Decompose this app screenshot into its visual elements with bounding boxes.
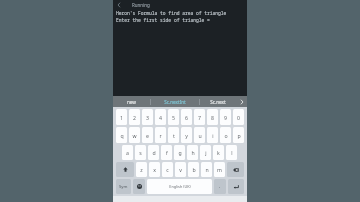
staticText: q <box>120 132 124 139</box>
button[interactable]: u <box>194 127 205 143</box>
button[interactable]: a <box>122 145 133 160</box>
button[interactable]: Back <box>115 1 122 8</box>
staticText: Heron's Formula to find area of triangle <box>116 10 227 16</box>
staticText: Sc.next <box>210 99 226 105</box>
button[interactable]: x <box>149 162 160 177</box>
button[interactable]: w <box>129 127 140 143</box>
staticText: 4 <box>159 114 162 121</box>
staticText: s <box>139 149 142 156</box>
button[interactable]: m <box>214 162 225 177</box>
button[interactable]: 6 <box>181 109 192 125</box>
button[interactable]: t <box>168 127 179 143</box>
staticText: a <box>126 149 129 156</box>
staticText: new <box>127 99 136 105</box>
button[interactable]: g <box>174 145 185 160</box>
button[interactable]: Period <box>214 179 226 194</box>
button[interactable]: v <box>175 162 186 177</box>
staticText: Enter the first side of triangle = <box>116 17 210 23</box>
button[interactable]: d <box>148 145 159 160</box>
staticText: g <box>178 149 182 156</box>
button[interactable]: z <box>136 162 147 177</box>
button[interactable]: j <box>200 145 211 160</box>
button[interactable]: 7 <box>194 109 205 125</box>
staticText: Sym <box>119 184 128 190</box>
button[interactable]: 9 <box>220 109 231 125</box>
staticText: h <box>191 149 195 156</box>
button[interactable]: q <box>116 127 127 143</box>
staticText: i <box>212 132 214 139</box>
button[interactable]: Sc.next <box>200 96 236 107</box>
button[interactable]: Symbols <box>116 179 131 194</box>
staticText: t <box>173 132 175 139</box>
button[interactable]: p <box>233 127 244 143</box>
staticText: 7 <box>198 114 201 121</box>
staticText: r <box>159 132 162 139</box>
staticText: w <box>132 132 137 139</box>
staticText: v <box>179 166 182 173</box>
staticText: 3 <box>146 114 149 121</box>
button[interactable]: 8 <box>207 109 218 125</box>
staticText: j <box>205 149 207 156</box>
button[interactable]: l <box>226 145 237 160</box>
staticText: m <box>217 166 222 173</box>
button[interactable]: Emoji <box>133 179 145 194</box>
staticText: English (UK) <box>169 184 191 189</box>
button[interactable]: Shift <box>116 162 134 177</box>
staticText: Sc.nextInt <box>164 99 186 105</box>
button[interactable]: 3 <box>142 109 153 125</box>
button[interactable]: b <box>188 162 199 177</box>
staticText: d <box>152 149 156 156</box>
staticText: . <box>219 183 221 190</box>
button[interactable]: Backspace <box>227 162 244 177</box>
staticText: e <box>146 132 149 139</box>
button[interactable]: 0 <box>233 109 244 125</box>
staticText: p <box>237 132 241 139</box>
staticText: 2 <box>133 114 136 121</box>
button[interactable]: k <box>213 145 224 160</box>
button[interactable]: i <box>207 127 218 143</box>
staticText: 8 <box>211 114 214 121</box>
staticText: u <box>198 132 202 139</box>
button[interactable]: y <box>181 127 192 143</box>
staticText: b <box>192 166 196 173</box>
button[interactable]: h <box>187 145 198 160</box>
button[interactable]: More suggestions <box>236 96 247 107</box>
staticText: c <box>166 166 169 173</box>
staticText: y <box>185 132 188 139</box>
staticText: 5 <box>172 114 175 121</box>
button[interactable]: s <box>135 145 146 160</box>
button[interactable]: n <box>201 162 212 177</box>
staticText: k <box>217 149 220 156</box>
staticText: l <box>231 149 233 156</box>
button[interactable]: c <box>162 162 173 177</box>
button[interactable]: e <box>142 127 153 143</box>
staticText: z <box>140 166 143 173</box>
staticText: n <box>205 166 209 173</box>
button[interactable]: new <box>113 96 150 107</box>
staticText: f <box>166 149 168 156</box>
button[interactable]: o <box>220 127 231 143</box>
staticText: 9 <box>224 114 227 121</box>
button[interactable]: 4 <box>155 109 166 125</box>
staticText: 6 <box>185 114 188 121</box>
staticText: 0 <box>237 114 240 121</box>
button[interactable]: Sc.nextInt <box>151 96 199 107</box>
button[interactable]: 2 <box>129 109 140 125</box>
button[interactable]: English (UK) <box>147 179 212 194</box>
button[interactable]: 1 <box>116 109 127 125</box>
button[interactable]: f <box>161 145 172 160</box>
button[interactable]: Enter <box>228 179 244 194</box>
button[interactable]: r <box>155 127 166 143</box>
button[interactable]: 5 <box>168 109 179 125</box>
staticText: 1 <box>120 114 123 121</box>
staticText: o <box>224 132 228 139</box>
staticText: x <box>153 166 156 173</box>
staticText: Running <box>132 2 150 8</box>
